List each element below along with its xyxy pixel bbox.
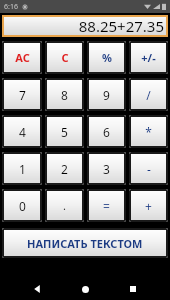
staticText: НАПИСАТЬ ТЕКСТОМ [27,236,143,251]
button[interactable]: 2 [45,152,84,185]
staticText: AC [15,50,30,65]
button[interactable]: = [87,189,126,222]
button[interactable]: AC [2,41,42,74]
button[interactable]: C [45,41,84,74]
button[interactable]: 3 [87,152,126,185]
button[interactable]: 4 [2,115,42,148]
staticText: +/- [141,50,156,65]
button[interactable]: Recent apps [122,278,144,300]
staticText: 5 [61,124,68,140]
staticText: - [147,161,151,177]
staticText: 0 [19,198,26,214]
staticText: 2 [61,161,68,177]
staticText: 6 [103,124,110,140]
staticText: 7 [19,87,26,103]
staticText: 3 [103,161,110,177]
button[interactable]: НАПИСАТЬ ТЕКСТОМ [2,228,168,258]
button[interactable]: % [87,41,126,74]
button[interactable]: / [129,78,168,111]
staticText: . [63,198,66,213]
button[interactable]: Back [26,278,48,300]
staticText: 1 [19,161,26,177]
button[interactable]: + [129,189,168,222]
button[interactable]: 8 [45,78,84,111]
staticText: 88.25+27.35 [78,16,164,36]
button[interactable]: Home [74,278,96,300]
staticText: / [146,87,151,103]
staticText: 8 [61,87,68,103]
button[interactable]: 7 [2,78,42,111]
staticText: 9 [103,87,110,103]
button[interactable]: 9 [87,78,126,111]
staticText: * [145,124,152,140]
button[interactable]: 6 [87,115,126,148]
staticText: 6:16 [4,2,18,12]
button[interactable]: . [45,189,84,222]
staticText: % [102,50,112,65]
staticText: + [145,198,152,214]
staticText: 4 [19,124,26,140]
button[interactable]: - [129,152,168,185]
button[interactable]: * [129,115,168,148]
staticText: C [61,50,69,65]
button[interactable]: 0 [2,189,42,222]
button[interactable]: 5 [45,115,84,148]
staticText: = [103,198,110,214]
button[interactable]: 1 [2,152,42,185]
button[interactable]: +/- [129,41,168,74]
